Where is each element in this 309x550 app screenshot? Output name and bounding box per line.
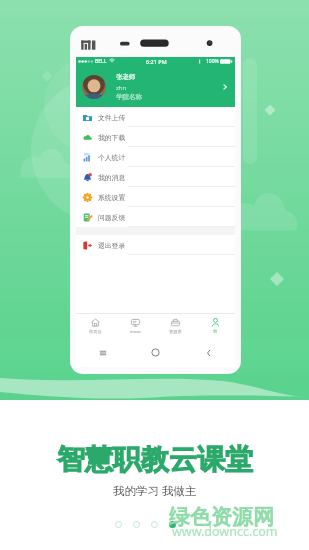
staticText: zhn [116, 84, 127, 92]
other: Back [205, 349, 213, 357]
staticText: 我 [213, 329, 218, 334]
staticText: 退出登录 [98, 241, 126, 250]
staticText: 问题反馈 [98, 213, 126, 222]
button[interactable]: 问题反馈 [76, 207, 235, 227]
other: Recent apps [99, 349, 107, 357]
button[interactable]: 系统设置 [76, 187, 235, 207]
staticText: 6:21 PM [146, 58, 167, 65]
button[interactable]: 文件上传 [76, 107, 235, 127]
other: Home [151, 348, 160, 357]
staticText: 绿色资源网 [169, 504, 274, 530]
staticText: 我的下载 [98, 133, 126, 142]
staticText: 学院名称 [116, 93, 142, 101]
button[interactable]: 我 [195, 314, 235, 338]
button[interactable]: mooc [115, 314, 155, 338]
staticText: 资源库 [169, 329, 182, 334]
staticText: 系统设置 [98, 193, 126, 202]
button[interactable]: 我的消息 [76, 167, 235, 187]
staticText: 文件上传 [98, 113, 126, 122]
other: Profile [221, 83, 229, 91]
staticText: 首页云 [89, 329, 102, 334]
staticText: 我的消息 [98, 173, 126, 182]
button[interactable]: 首页云 [76, 314, 115, 338]
staticText: mooc [130, 329, 141, 335]
staticText: 张老师 [116, 73, 136, 81]
button[interactable]: 张老师 [76, 66, 235, 107]
staticText: 个人统计 [98, 153, 126, 162]
staticText: BELL [95, 58, 107, 65]
button[interactable]: 个人统计 [76, 147, 235, 167]
button[interactable]: 资源库 [155, 314, 195, 338]
staticText: 我的学习 我做主 [113, 483, 197, 499]
button[interactable]: 我的下载 [76, 127, 235, 147]
staticText: 100% [206, 58, 219, 65]
staticText: www.downcc.com [172, 523, 278, 540]
button[interactable]: 退出登录 [76, 235, 235, 255]
staticText: 智慧职教云课堂 [57, 442, 253, 477]
